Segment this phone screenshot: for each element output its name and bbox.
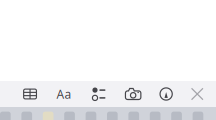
button[interactable]: Text format bbox=[47, 81, 81, 107]
button[interactable]: Camera bbox=[114, 81, 148, 107]
button[interactable]: Table bbox=[13, 81, 47, 107]
staticText: Aa bbox=[57, 86, 72, 102]
button[interactable]: Close keyboard bbox=[182, 81, 216, 107]
button[interactable]: Markup bbox=[148, 81, 182, 107]
button[interactable]: Checklist bbox=[81, 81, 114, 107]
